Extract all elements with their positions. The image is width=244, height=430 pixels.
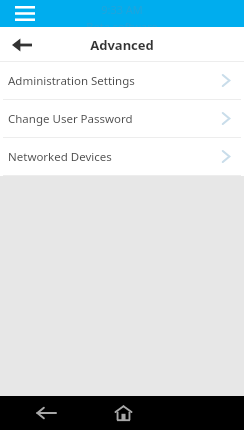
button[interactable]: Change User Password [0, 100, 244, 137]
staticText: Administration Settings [8, 73, 222, 89]
staticText: Advanced [90, 36, 154, 54]
button[interactable]: Networked Devices [0, 138, 244, 175]
staticText: Networked Devices [8, 149, 222, 165]
button[interactable]: Back [30, 397, 62, 429]
button[interactable]: Administration Settings [0, 62, 244, 99]
button[interactable]: Home [107, 397, 139, 429]
button[interactable]: Open navigation menu [10, 0, 40, 27]
staticText: Beta software [86, 19, 158, 27]
staticText: Change User Password [8, 111, 222, 127]
staticText: 9:33 AM [101, 2, 143, 17]
button[interactable]: Back [6, 29, 38, 61]
